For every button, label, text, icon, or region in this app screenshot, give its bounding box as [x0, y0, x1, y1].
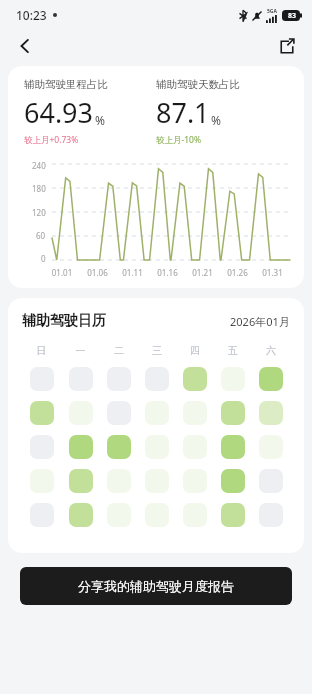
staticText: 01.26 — [220, 267, 255, 278]
staticText: 120 — [32, 207, 46, 218]
button[interactable] — [259, 469, 283, 493]
staticText: % — [95, 112, 105, 128]
staticText: 较上月-10% — [156, 134, 202, 146]
staticText: 01.06 — [80, 267, 115, 278]
button[interactable] — [107, 401, 131, 425]
staticText: 64.93 — [24, 94, 94, 131]
staticText: 分享我的辅助驾驶月度报告 — [78, 578, 234, 594]
button[interactable] — [221, 435, 245, 459]
staticText: 87.1 — [156, 94, 210, 131]
button[interactable] — [69, 435, 93, 459]
staticText: 10:23 — [16, 7, 47, 23]
staticText: 二 — [100, 344, 138, 357]
button[interactable] — [221, 367, 245, 391]
button[interactable] — [259, 367, 283, 391]
staticText: 辅助驾驶天数占比 — [156, 78, 240, 91]
button[interactable]: Share — [270, 30, 304, 62]
staticText: 日 — [22, 344, 61, 357]
button[interactable] — [30, 469, 54, 493]
button[interactable] — [259, 435, 283, 459]
button[interactable] — [69, 469, 93, 493]
staticText: 0 — [41, 253, 46, 264]
button[interactable] — [145, 401, 169, 425]
button[interactable] — [221, 401, 245, 425]
button[interactable] — [183, 367, 207, 391]
button[interactable] — [30, 503, 54, 527]
button[interactable] — [221, 469, 245, 493]
staticText: 六 — [252, 344, 290, 357]
button[interactable] — [107, 367, 131, 391]
staticText: 01.11 — [115, 267, 150, 278]
staticText: 01.16 — [150, 267, 185, 278]
button[interactable] — [69, 401, 93, 425]
staticText: 一 — [61, 344, 100, 357]
staticText: 较上月+0.73% — [24, 134, 79, 146]
staticText: 01.01 — [44, 267, 80, 278]
staticText: 60 — [36, 230, 46, 241]
button[interactable] — [145, 435, 169, 459]
staticText: 辅助驾驶日历 — [22, 312, 106, 330]
button[interactable] — [183, 401, 207, 425]
button[interactable] — [30, 367, 54, 391]
button[interactable] — [107, 435, 131, 459]
button[interactable] — [30, 435, 54, 459]
button[interactable] — [30, 401, 54, 425]
staticText: 2026年01月 — [230, 314, 290, 329]
button[interactable] — [183, 503, 207, 527]
button[interactable] — [145, 367, 169, 391]
button[interactable] — [183, 435, 207, 459]
button[interactable] — [107, 469, 131, 493]
staticText: 240 — [32, 160, 46, 171]
button[interactable] — [259, 503, 283, 527]
button[interactable] — [145, 469, 169, 493]
button[interactable] — [107, 503, 131, 527]
staticText: 5GA — [267, 8, 277, 15]
button[interactable]: 分享我的辅助驾驶月度报告 — [20, 567, 292, 605]
button[interactable] — [221, 503, 245, 527]
staticText: 180 — [32, 183, 46, 194]
staticText: 01.31 — [255, 267, 290, 278]
staticText: % — [211, 112, 221, 128]
staticText: 三 — [138, 344, 176, 357]
staticText: 四 — [176, 344, 214, 357]
staticText: 83 — [288, 11, 297, 21]
staticText: 01.21 — [185, 267, 220, 278]
staticText: 辅助驾驶里程占比 — [24, 78, 108, 91]
button[interactable] — [69, 367, 93, 391]
button[interactable] — [145, 503, 169, 527]
button[interactable] — [183, 469, 207, 493]
button[interactable] — [69, 503, 93, 527]
staticText: 五 — [214, 344, 252, 357]
button[interactable]: Back — [8, 30, 42, 62]
button[interactable] — [259, 401, 283, 425]
